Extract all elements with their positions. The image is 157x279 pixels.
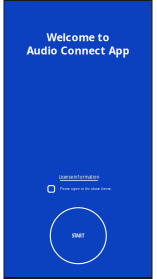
staticText: Audio Connect App xyxy=(26,43,129,57)
button[interactable]: START xyxy=(50,207,106,264)
button[interactable]: License information xyxy=(5,174,152,181)
staticText: Please agree to the above license. xyxy=(60,187,112,191)
staticText: Welcome to xyxy=(46,30,109,44)
staticText: License information xyxy=(58,174,99,180)
button[interactable]: Please agree to the above license. xyxy=(6,186,153,192)
staticText: START xyxy=(72,233,85,239)
